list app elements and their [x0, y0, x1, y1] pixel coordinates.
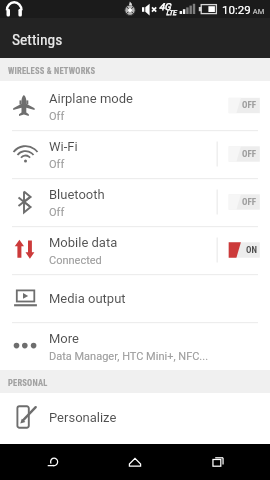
- staticText: Bluetooth: [49, 187, 105, 202]
- button[interactable]: ON: [216, 226, 270, 274]
- button[interactable]: Media output: [0, 274, 270, 322]
- staticText: OFF: [242, 197, 257, 208]
- button[interactable]: OFF: [216, 178, 270, 226]
- button[interactable]: OFF: [216, 130, 270, 178]
- staticText: 10:29: [222, 3, 251, 16]
- staticText: More: [49, 331, 79, 346]
- staticText: Settings: [12, 31, 63, 49]
- staticText: PERSONAL: [8, 378, 48, 388]
- button[interactable]: Personalize: [0, 393, 270, 441]
- staticText: Connected: [49, 254, 102, 267]
- staticText: OFF: [242, 100, 257, 111]
- staticText: Off: [49, 158, 65, 171]
- staticText: ON: [246, 245, 257, 256]
- staticText: OFF: [242, 149, 257, 160]
- staticText: LTE: [166, 9, 177, 17]
- staticText: AM: [251, 7, 265, 16]
- staticText: Off: [49, 206, 65, 219]
- staticText: 4G: [159, 1, 171, 12]
- button[interactable]: Mobile data: [0, 226, 270, 274]
- button[interactable]: Bluetooth: [0, 178, 270, 226]
- button[interactable]: Home: [105, 444, 165, 480]
- staticText: Personalize: [49, 410, 117, 425]
- staticText: Airplane mode: [49, 91, 133, 106]
- staticText: WIRELESS & NETWORKS: [8, 66, 96, 76]
- button[interactable]: Airplane mode: [0, 81, 270, 130]
- staticText: Mobile data: [49, 235, 118, 250]
- staticText: Wi-Fi: [49, 139, 78, 154]
- button[interactable]: Wi-Fi: [0, 130, 270, 178]
- staticText: Media output: [49, 291, 126, 306]
- button[interactable]: Recent apps: [188, 444, 248, 480]
- staticText: Off: [49, 110, 65, 123]
- button[interactable]: Back: [23, 444, 83, 480]
- button[interactable]: More: [0, 322, 270, 370]
- staticText: Data Manager, HTC Mini+, NFC...: [49, 350, 209, 363]
- button[interactable]: OFF: [216, 81, 270, 130]
